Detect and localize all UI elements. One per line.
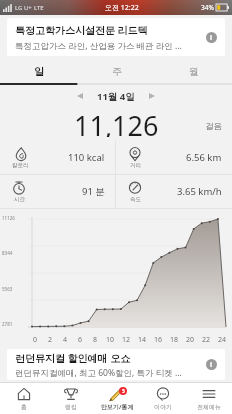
- staticText: 24: [218, 335, 227, 345]
- button[interactable]: 전체메뉴: [186, 383, 232, 414]
- button[interactable]: 거리: [116, 141, 232, 174]
- button[interactable]: 광고 정보: [206, 32, 217, 43]
- staticText: 22: [202, 335, 211, 345]
- button[interactable]: 이야기: [140, 383, 186, 414]
- staticText: 20: [186, 335, 195, 345]
- staticText: 걸음: [205, 121, 222, 132]
- staticText: 6: [78, 335, 83, 345]
- staticText: 34%: [201, 3, 214, 12]
- staticText: 16: [154, 335, 163, 345]
- staticText: 110 kcal: [68, 151, 105, 164]
- staticText: 특정고학가스시설전문 리드텍: [15, 23, 148, 37]
- button[interactable]: 랭킹: [47, 383, 94, 414]
- staticText: 8344: [2, 250, 13, 256]
- staticText: 만보기/통계: [101, 403, 134, 411]
- button[interactable]: 특정고학가스시설전문 리드텍: [7, 18, 225, 56]
- staticText: 10: [106, 335, 115, 345]
- staticText: 6.56 km: [186, 151, 222, 164]
- staticText: LG U+: [15, 4, 32, 12]
- staticText: 12: [122, 335, 131, 345]
- button[interactable]: 런던뮤지컬 할인예매 오쇼: [7, 349, 225, 380]
- staticText: 랭킹: [65, 403, 77, 411]
- staticText: LTE: [34, 4, 44, 12]
- button[interactable]: 다음 날짜: [143, 87, 161, 105]
- staticText: 런던뮤지컬 할인예매 오쇼: [15, 351, 131, 365]
- staticText: 2781: [2, 321, 13, 327]
- staticText: 18: [170, 335, 179, 345]
- button[interactable]: 칼로리: [0, 141, 115, 174]
- staticText: 시간: [14, 196, 25, 203]
- staticText: 2: [48, 335, 53, 345]
- staticText: 일: [34, 65, 44, 78]
- button[interactable]: 월: [155, 59, 232, 83]
- staticText: 월: [189, 65, 199, 78]
- staticText: 칼로리: [12, 162, 29, 169]
- staticText: i: [210, 360, 213, 370]
- staticText: 91 분: [82, 185, 105, 198]
- staticText: 0: [33, 335, 38, 345]
- staticText: 5563: [2, 286, 13, 292]
- staticText: 전체메뉴: [197, 403, 221, 411]
- button[interactable]: 5: [94, 383, 140, 414]
- button[interactable]: 속도: [116, 175, 232, 208]
- staticText: i: [210, 33, 213, 43]
- staticText: 홈: [21, 403, 27, 411]
- button[interactable]: 홈: [0, 383, 47, 414]
- staticText: 4: [63, 335, 68, 345]
- staticText: 8: [93, 335, 98, 345]
- staticText: 속도: [130, 196, 141, 203]
- button[interactable]: 이전 날짜: [71, 87, 89, 105]
- button[interactable]: 시간: [0, 175, 115, 208]
- staticText: 11월 4일: [97, 90, 135, 103]
- staticText: 특정고압가스 라인, 산업용 가스 배관 라인 …: [15, 40, 182, 52]
- staticText: 11126: [2, 215, 15, 221]
- staticText: 오전 12:22: [105, 3, 139, 13]
- staticText: 11,126: [74, 107, 159, 137]
- staticText: 이야기: [154, 403, 172, 411]
- button[interactable]: 광고 정보: [206, 359, 217, 370]
- staticText: 런던뮤지컬예매, 최고 60%할인, 특가 티켓 …: [15, 367, 182, 379]
- button[interactable]: 주: [78, 59, 155, 83]
- staticText: 주: [112, 65, 122, 78]
- staticText: 거리: [130, 162, 141, 169]
- staticText: 5: [122, 388, 125, 395]
- button[interactable]: 일: [0, 59, 78, 83]
- staticText: 3.65 km/h: [177, 185, 222, 198]
- staticText: 14: [138, 335, 147, 345]
